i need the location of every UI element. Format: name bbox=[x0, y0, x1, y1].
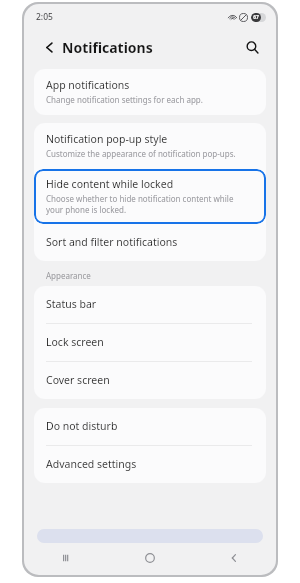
button[interactable]: App notifications bbox=[34, 69, 266, 115]
button[interactable]: Back bbox=[38, 36, 60, 58]
button[interactable]: Cover screen bbox=[34, 362, 266, 399]
staticText: Notifications bbox=[62, 38, 153, 57]
staticText: Appearance bbox=[46, 270, 91, 281]
button[interactable]: Search bbox=[240, 35, 264, 59]
staticText: Change notification settings for each ap… bbox=[46, 94, 203, 105]
button[interactable]: Recents bbox=[24, 543, 108, 573]
staticText: Choose whether to hide notification cont… bbox=[46, 193, 252, 215]
button[interactable]: Notification pop-up style bbox=[34, 123, 266, 169]
staticText: Cover screen bbox=[46, 373, 110, 387]
button[interactable]: Home bbox=[108, 543, 192, 573]
staticText: 2:05 bbox=[36, 11, 53, 23]
staticText: Notification pop-up style bbox=[46, 132, 168, 146]
staticText: Lock screen bbox=[46, 335, 104, 349]
button[interactable]: Status bar bbox=[34, 286, 266, 323]
staticText: Advanced settings bbox=[46, 457, 137, 471]
button[interactable]: Hide content while locked bbox=[34, 169, 266, 224]
staticText: Do not disturb bbox=[46, 419, 118, 433]
button[interactable]: Advanced settings bbox=[34, 446, 266, 483]
staticText: App notifications bbox=[46, 78, 130, 92]
button[interactable]: Lock screen bbox=[34, 324, 266, 361]
staticText: Status bar bbox=[46, 297, 97, 311]
staticText: Hide content while locked bbox=[46, 177, 174, 191]
button[interactable]: Sort and filter notifications bbox=[34, 224, 266, 261]
staticText: Customize the appearance of notification… bbox=[46, 148, 236, 159]
button[interactable]: Back bbox=[192, 543, 276, 573]
button[interactable]: Do not disturb bbox=[34, 408, 266, 445]
staticText: Sort and filter notifications bbox=[46, 235, 178, 249]
staticText: 67 bbox=[253, 14, 259, 21]
